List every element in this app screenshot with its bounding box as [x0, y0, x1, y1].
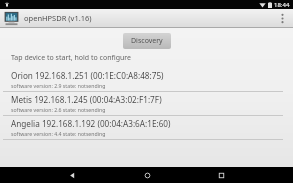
button[interactable]: Home — [137, 167, 157, 183]
staticText: Angelia 192.168.1.192 (00:04:A3:6A:1E:60… — [11, 118, 171, 129]
staticText: Tap device to start, hold to configure — [11, 53, 132, 63]
button[interactable]: Back — [62, 167, 82, 183]
button[interactable]: More options — [275, 9, 289, 27]
staticText: openHPSDR (v1.16) — [24, 13, 275, 23]
staticText: 18:44 — [274, 1, 290, 9]
staticText: Discovery — [131, 36, 163, 46]
staticText: Orion 192.168.1.251 (00:1E:C0:A8:48:75) — [11, 70, 164, 81]
button[interactable]: Angelia 192.168.1.192 (00:04:A3:6A:1E:60… — [0, 116, 293, 139]
button[interactable]: Recent apps — [211, 167, 231, 183]
staticText: software version: 2.6 state: notsending — [11, 106, 106, 113]
staticText: Metis 192.168.1.245 (00:04:A3:02:F1:7F) — [11, 94, 162, 105]
button[interactable]: Discovery — [123, 33, 171, 49]
staticText: software version: 4.4 state: notsending — [11, 130, 106, 137]
button[interactable]: Orion 192.168.1.251 (00:1E:C0:A8:48:75) — [0, 68, 293, 91]
staticText: software version: 2.9 state: notsending — [11, 82, 106, 89]
button[interactable]: Metis 192.168.1.245 (00:04:A3:02:F1:7F) — [0, 92, 293, 115]
